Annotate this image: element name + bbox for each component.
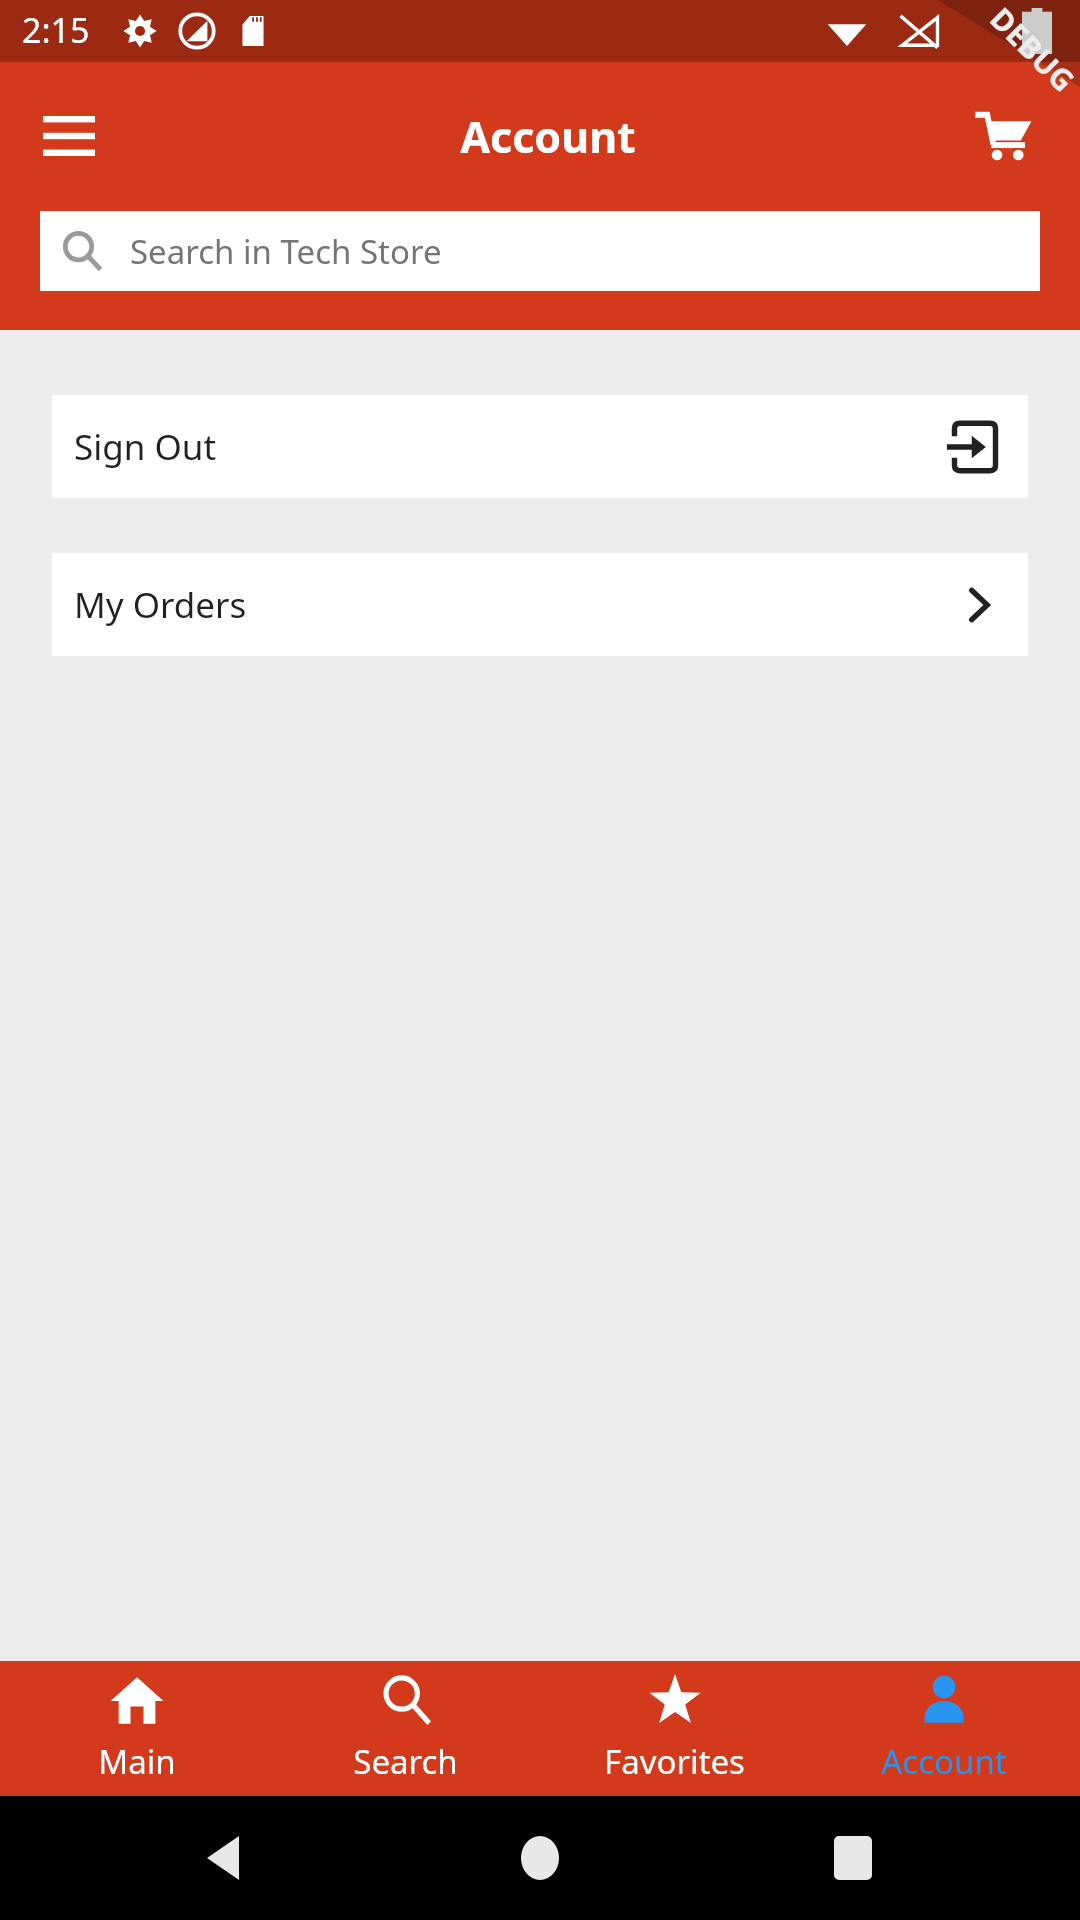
button[interactable]: Recent apps xyxy=(798,1803,908,1913)
staticText: Sign Out xyxy=(74,423,217,471)
button[interactable]: Back xyxy=(168,1803,278,1913)
button[interactable]: Account xyxy=(811,1663,1076,1794)
staticText: Main xyxy=(98,1739,176,1784)
button[interactable]: Favorites xyxy=(542,1663,807,1794)
button[interactable]: My Orders xyxy=(52,553,1028,656)
staticText: Account xyxy=(881,1739,1007,1784)
staticText: Search in Tech Store xyxy=(130,229,442,274)
button[interactable]: Search xyxy=(273,1663,538,1794)
button[interactable]: Main xyxy=(4,1663,269,1794)
staticText: Favorites xyxy=(604,1739,745,1784)
button[interactable]: Cart xyxy=(954,86,1054,186)
button[interactable]: Search in Tech Store xyxy=(40,211,1040,291)
staticText: Account xyxy=(460,107,636,166)
button[interactable]: Menu xyxy=(14,81,124,191)
button[interactable]: Sign Out xyxy=(52,395,1028,498)
staticText: 2:15 xyxy=(22,7,90,53)
staticText: Search xyxy=(353,1739,458,1784)
button[interactable]: Home xyxy=(485,1803,595,1913)
staticText: DEBUG xyxy=(982,0,1080,101)
staticText: My Orders xyxy=(74,581,247,629)
